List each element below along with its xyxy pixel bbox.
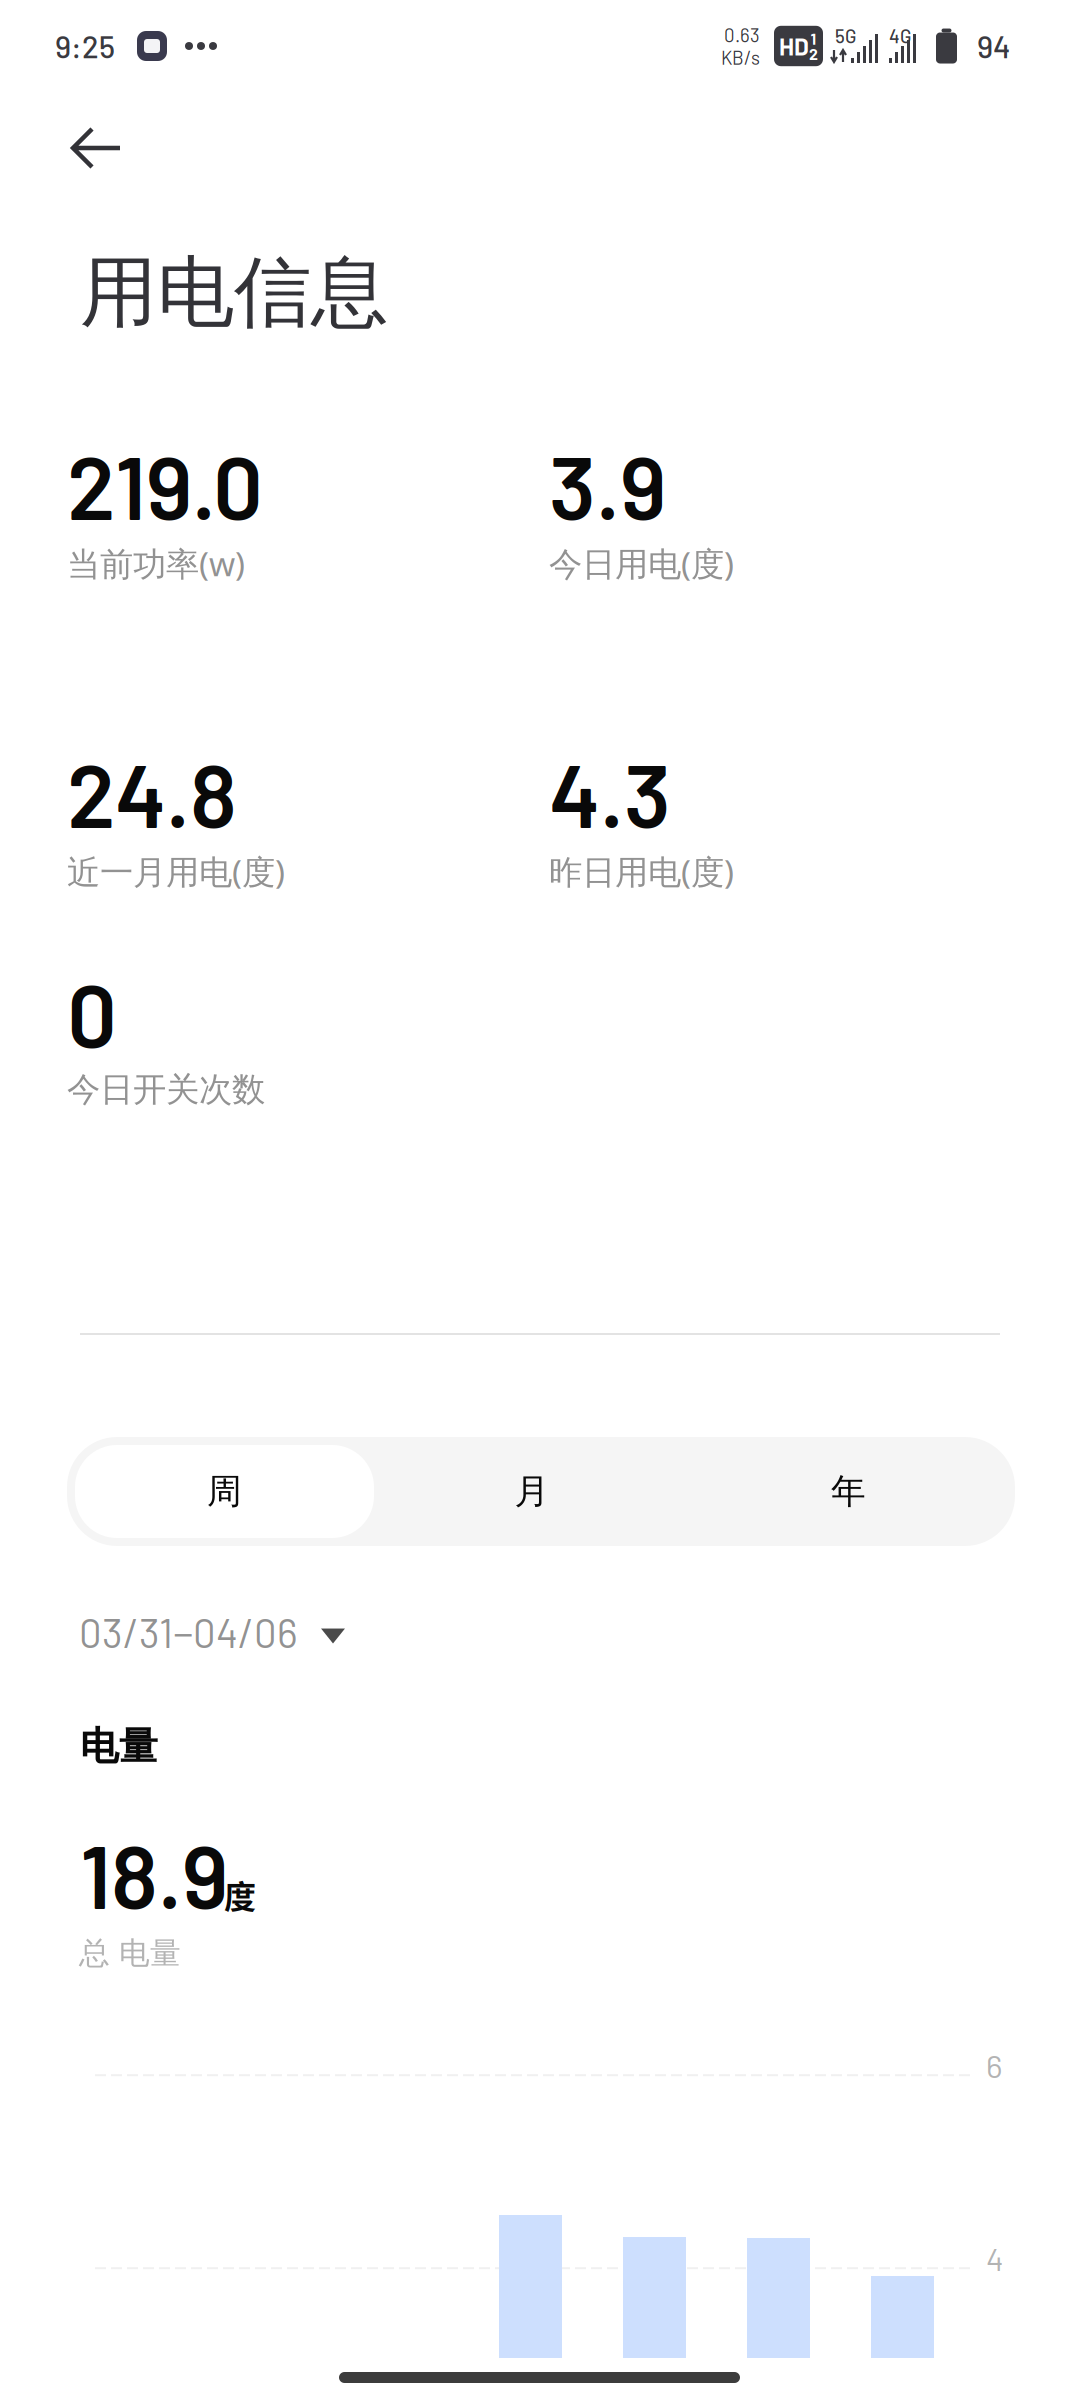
staticText: 近一月用电(度): [67, 849, 285, 894]
staticText: 9:25: [55, 28, 115, 64]
staticText: 3.9: [549, 432, 666, 538]
staticText: 6: [986, 2046, 1002, 2084]
staticText: 2: [809, 44, 818, 63]
staticText: 用电信息: [80, 244, 388, 341]
button[interactable]: 年: [690, 1445, 1007, 1538]
staticText: 昨日用电(度): [549, 849, 734, 894]
staticText: HD: [779, 32, 809, 60]
staticText: 03/31−04/06: [79, 1608, 298, 1656]
staticText: 1: [810, 29, 816, 48]
staticText: 4.3: [549, 740, 671, 846]
button[interactable]: 月: [374, 1445, 690, 1538]
staticText: 5G: [835, 25, 856, 47]
staticText: 4: [986, 2239, 1004, 2277]
staticText: 今日用电(度): [549, 541, 734, 586]
staticText: 0: [67, 960, 117, 1066]
staticText: 度: [224, 1871, 256, 1918]
button[interactable]: 周: [75, 1445, 374, 1538]
staticText: 总 电量: [79, 1934, 181, 1973]
staticText: 94: [977, 28, 1010, 64]
staticText: 当前功率(w): [67, 541, 245, 586]
staticText: 今日开关次数: [67, 1069, 265, 1111]
staticText: KB/s: [721, 46, 760, 68]
staticText: 周: [207, 1470, 242, 1513]
button[interactable]: Back: [48, 104, 146, 193]
staticText: 24.8: [67, 740, 237, 846]
staticText: 18.9: [80, 1821, 228, 1927]
button[interactable]: 03/31−04/06: [69, 1594, 358, 1670]
staticText: 4G: [889, 25, 911, 47]
staticText: 年: [831, 1470, 866, 1513]
staticText: 月: [514, 1470, 549, 1513]
staticText: 219.0: [67, 432, 263, 538]
staticText: 电量: [80, 1722, 158, 1771]
staticText: 0.63: [724, 24, 760, 46]
